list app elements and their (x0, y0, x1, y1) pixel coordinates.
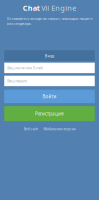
staticText: Мобильная версия (43, 126, 75, 131)
staticText: Войти (42, 93, 56, 99)
button[interactable]: Регистрация (4, 106, 95, 121)
staticText: Регистрация (35, 111, 64, 117)
staticText: Вход (44, 53, 54, 59)
staticText: Ваш пароль (7, 78, 27, 83)
button[interactable]: Мобильная версия (43, 126, 75, 131)
staticText: Ваш логин или E-mail (7, 65, 43, 70)
staticText: Оставайтесь всегда на связи с помощью на… (6, 16, 92, 26)
button[interactable]: Веб-сайт (23, 126, 38, 131)
staticText: Chat (23, 3, 40, 13)
button[interactable]: Войти (4, 90, 95, 103)
staticText: Веб-сайт (23, 126, 38, 131)
staticText: Vii Engine (41, 3, 76, 13)
